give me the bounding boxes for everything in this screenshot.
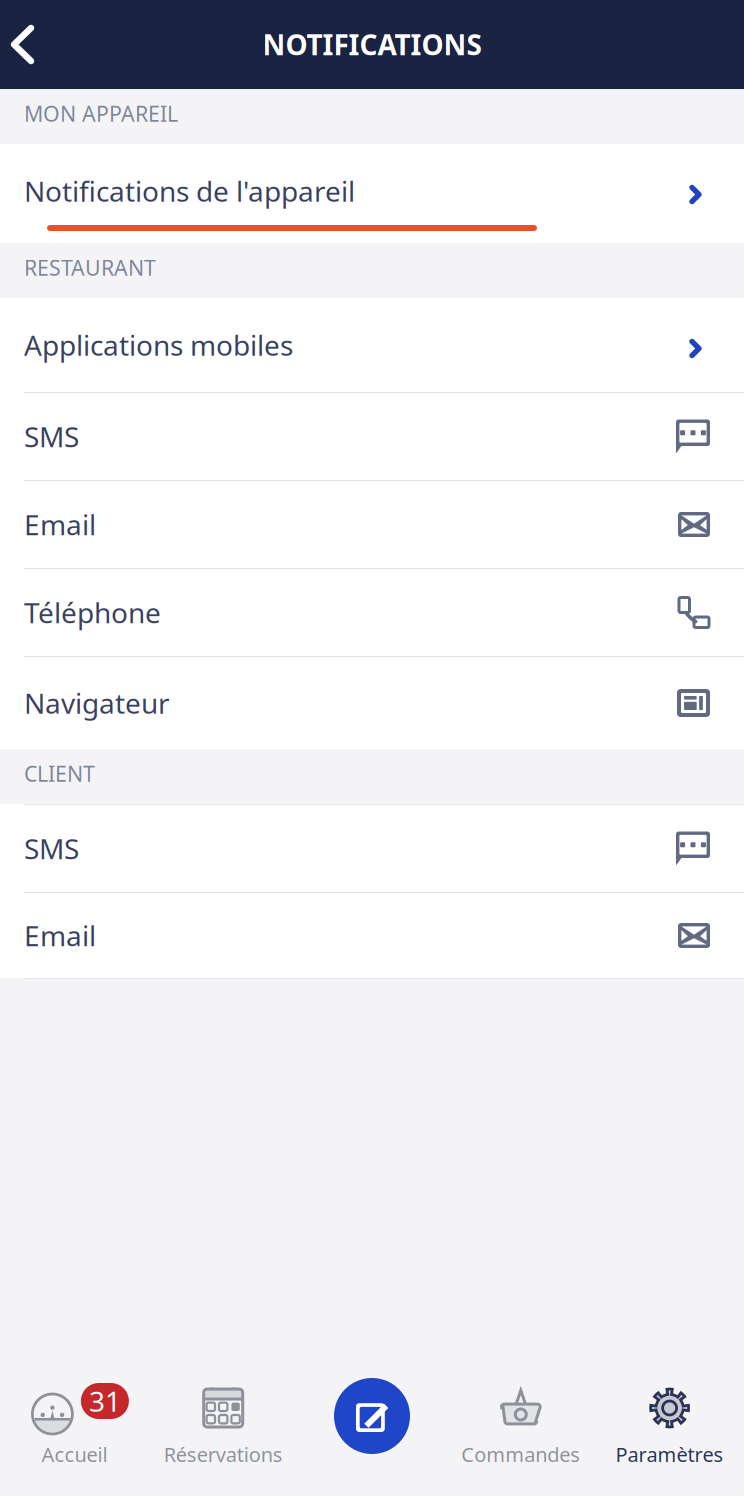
button[interactable]: Notifications de l'appareil (0, 144, 744, 243)
button[interactable]: Commandes (446, 1350, 595, 1496)
staticText: NOTIFICATIONS (262, 26, 481, 63)
staticText: RESTAURANT (24, 253, 156, 282)
button[interactable]: 31 (0, 1350, 149, 1496)
button[interactable]: Navigateur (0, 656, 744, 749)
staticText: Paramètres (616, 1441, 724, 1468)
button[interactable]: Téléphone (0, 568, 744, 656)
button[interactable]: Nouvelle commande (334, 1378, 410, 1454)
staticText: Email (24, 917, 96, 954)
staticText: Commandes (461, 1441, 580, 1468)
button[interactable]: SMS (0, 392, 744, 480)
staticText: Email (24, 506, 96, 543)
staticText: 31 (89, 1382, 121, 1420)
button[interactable]: Réservations (149, 1350, 298, 1496)
staticText: Téléphone (24, 594, 161, 631)
button[interactable]: Paramètres (595, 1350, 744, 1496)
staticText: Applications mobiles (24, 326, 293, 364)
staticText: MON APPAREIL (24, 99, 178, 128)
button[interactable]: SMS (0, 804, 744, 892)
staticText: SMS (24, 830, 79, 867)
button[interactable]: Email (0, 892, 744, 978)
staticText: Réservations (164, 1441, 283, 1468)
staticText: Accueil (41, 1441, 107, 1468)
staticText: Notifications de l'appareil (24, 172, 355, 210)
staticText: CLIENT (24, 759, 95, 788)
button[interactable]: Email (0, 480, 744, 568)
button[interactable]: Applications mobiles (0, 298, 744, 392)
staticText: Navigateur (24, 684, 170, 722)
button[interactable]: Back (0, 8, 53, 81)
staticText: SMS (24, 418, 79, 455)
button[interactable] (298, 1350, 446, 1496)
